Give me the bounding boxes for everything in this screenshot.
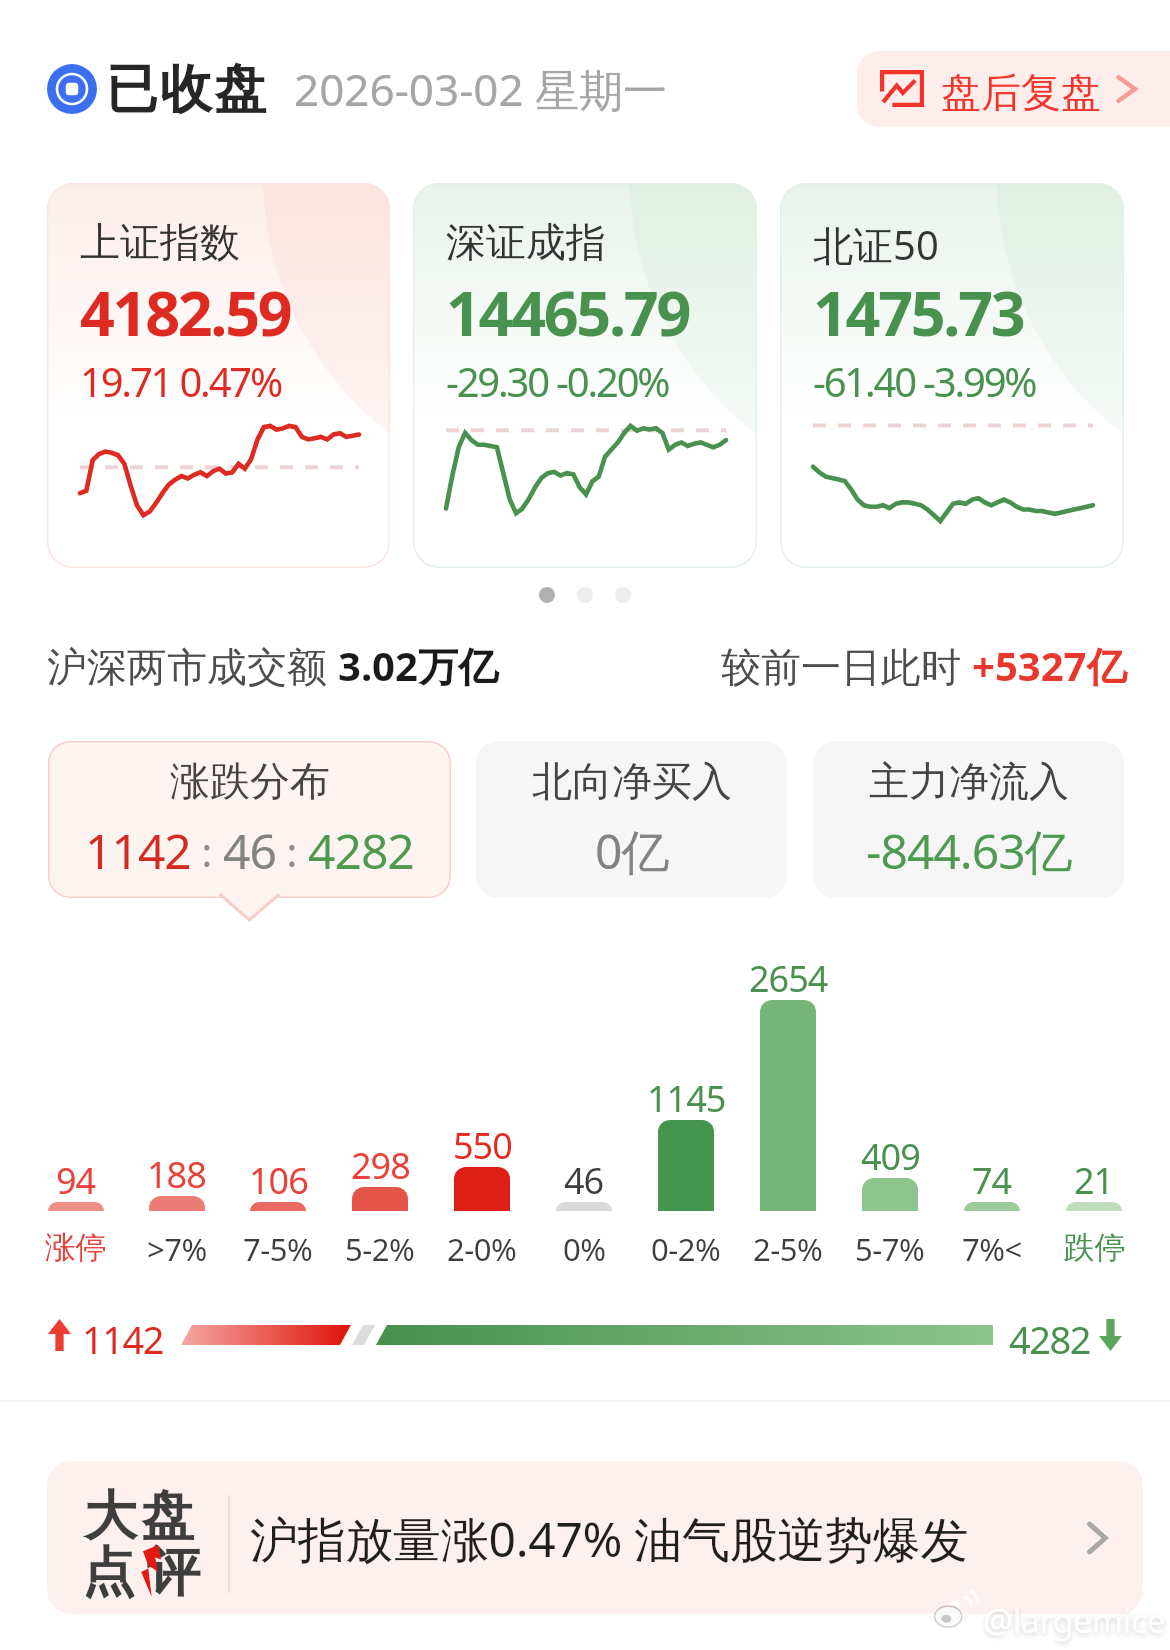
staticText: 21 [1074,1156,1114,1205]
staticText: 大盘 [82,1483,196,1550]
staticText: 点 [82,1539,135,1606]
button[interactable]: 大盘 [47,1461,1143,1614]
staticText: 7%< [962,1228,1022,1270]
staticText: 深证成指 [446,217,606,267]
staticText: 4282 [308,818,414,883]
staticText: 评 [147,1539,200,1606]
staticText: : [191,824,223,878]
staticText: 上证指数 [80,217,240,267]
staticText: 沪指放量涨0.47% 油气股逆势爆发 [250,1506,969,1572]
staticText: 主力净流入 [869,756,1069,806]
staticText: 74 [972,1156,1012,1205]
staticText: 46 [564,1156,604,1205]
staticText: 2-5% [753,1228,823,1270]
staticText: : [276,824,308,878]
staticText: >7% [147,1228,207,1270]
staticText: 2026-03-02 星期一 [294,59,668,119]
staticText: 94 [56,1156,96,1205]
button[interactable]: 深证成指 [413,183,757,568]
staticText: 0亿 [595,818,669,884]
other: Review chart [880,70,924,107]
staticText: -844.63亿 [866,818,1072,884]
button[interactable]: Review chart [857,51,1170,127]
button[interactable]: 北证50 [780,183,1124,568]
staticText: 409 [861,1132,920,1181]
staticText: 跌停 [1064,1228,1125,1267]
staticText: -29.30 -0.20% [446,354,669,408]
button[interactable]: 上证指数 [47,183,390,568]
staticText: 1142 [85,818,191,883]
button[interactable]: 主力净流入 [813,741,1124,898]
staticText: 已收盘 [105,57,267,123]
other: Open market commentary [1073,1515,1119,1561]
staticText: @largemice [983,1598,1166,1643]
button[interactable]: 北向净买入 [476,741,787,898]
staticText: 2-0% [447,1228,517,1270]
staticText: 550 [453,1121,512,1170]
staticText: 106 [249,1156,308,1205]
staticText: 2654 [749,954,828,1003]
staticText: 较前一日此时 [721,638,972,693]
staticText: 沪深两市成交额 [47,638,338,693]
staticText: 北证50 [813,217,939,272]
staticText: 盘后复盘 [941,67,1101,117]
button[interactable]: 涨跌分布 [48,741,451,898]
staticText: 0% [563,1228,606,1270]
staticText: 5-7% [855,1228,925,1270]
staticText: 14465.79 [446,271,689,354]
staticText: 1475.73 [813,271,1024,354]
staticText: 1142 [82,1313,163,1357]
staticText: 涨跌分布 [170,756,330,806]
staticText: 涨停 [45,1228,106,1267]
staticText: 4282 [1009,1313,1090,1357]
staticText: 1145 [647,1074,726,1123]
staticText: 46 [223,818,276,883]
staticText: +5327亿 [972,638,1127,693]
staticText: 5-2% [345,1228,415,1270]
staticText: 4182.59 [80,271,291,354]
staticText: 3.02万亿 [338,638,498,693]
staticText: 188 [147,1150,206,1199]
staticText: 19.71 0.47% [80,354,282,408]
staticText: 7-5% [243,1228,313,1270]
staticText: 北向净买入 [532,756,732,806]
staticText: -61.40 -3.99% [813,354,1036,408]
staticText: 0-2% [651,1228,721,1270]
staticText: 298 [351,1141,410,1190]
